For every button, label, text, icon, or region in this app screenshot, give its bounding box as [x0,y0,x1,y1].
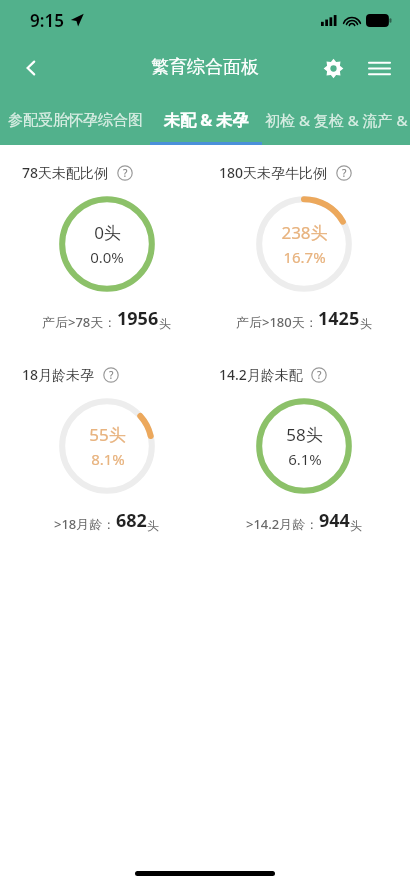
staticText: 238头 [281,221,328,244]
button[interactable]: Help [103,367,119,383]
staticText: 未配 & 未孕 [164,109,249,131]
button[interactable]: 18月龄未孕 [8,355,402,543]
staticText: 参配受胎怀孕综合图 [8,111,143,130]
staticText: 18月龄未孕 [22,365,95,384]
button[interactable]: 78天未配比例 [8,153,402,341]
button[interactable]: 未配 & 未孕 [150,95,262,145]
staticText: >14.2月龄： [246,515,319,533]
staticText: 78天未配比例 [22,163,109,182]
staticText: 0.0% [90,247,124,267]
staticText: 产后>180天： [236,313,318,331]
staticText: 0头 [94,221,121,244]
staticText: ? [342,166,347,180]
button[interactable]: Help [336,165,352,181]
staticText: ? [123,166,128,180]
staticText: 初检 & 复检 & 流产 & [265,110,408,130]
staticText: 头 [350,518,362,533]
button[interactable]: Help [117,165,133,181]
staticText: 头 [159,316,171,331]
staticText: 14.2月龄未配 [219,365,303,384]
staticText: 1956 [117,306,159,331]
staticText: 头 [147,518,159,533]
staticText: 9:15 [30,9,64,32]
staticText: 繁育综合面板 [151,56,259,79]
button[interactable]: Back [12,49,50,87]
staticText: 1425 [318,306,360,331]
staticText: 产后>78天： [42,313,117,331]
staticText: ? [317,368,322,382]
button[interactable]: Menu [360,49,398,87]
button[interactable]: 参配受胎怀孕综合图 [0,95,150,145]
staticText: >18月龄： [54,515,116,533]
staticText: 180天未孕牛比例 [219,163,328,182]
button[interactable]: Settings [314,49,352,87]
staticText: 6.1% [288,449,322,469]
button[interactable]: Help [311,367,327,383]
staticText: 682 [116,508,147,533]
staticText: ? [109,368,114,382]
staticText: 16.7% [283,247,326,267]
staticText: 58头 [286,423,323,446]
staticText: 944 [319,508,350,533]
staticText: 头 [360,316,372,331]
staticText: 8.1% [91,449,125,469]
button[interactable]: 初检 & 复检 & 流产 & [262,95,410,145]
staticText: 55头 [89,423,126,446]
